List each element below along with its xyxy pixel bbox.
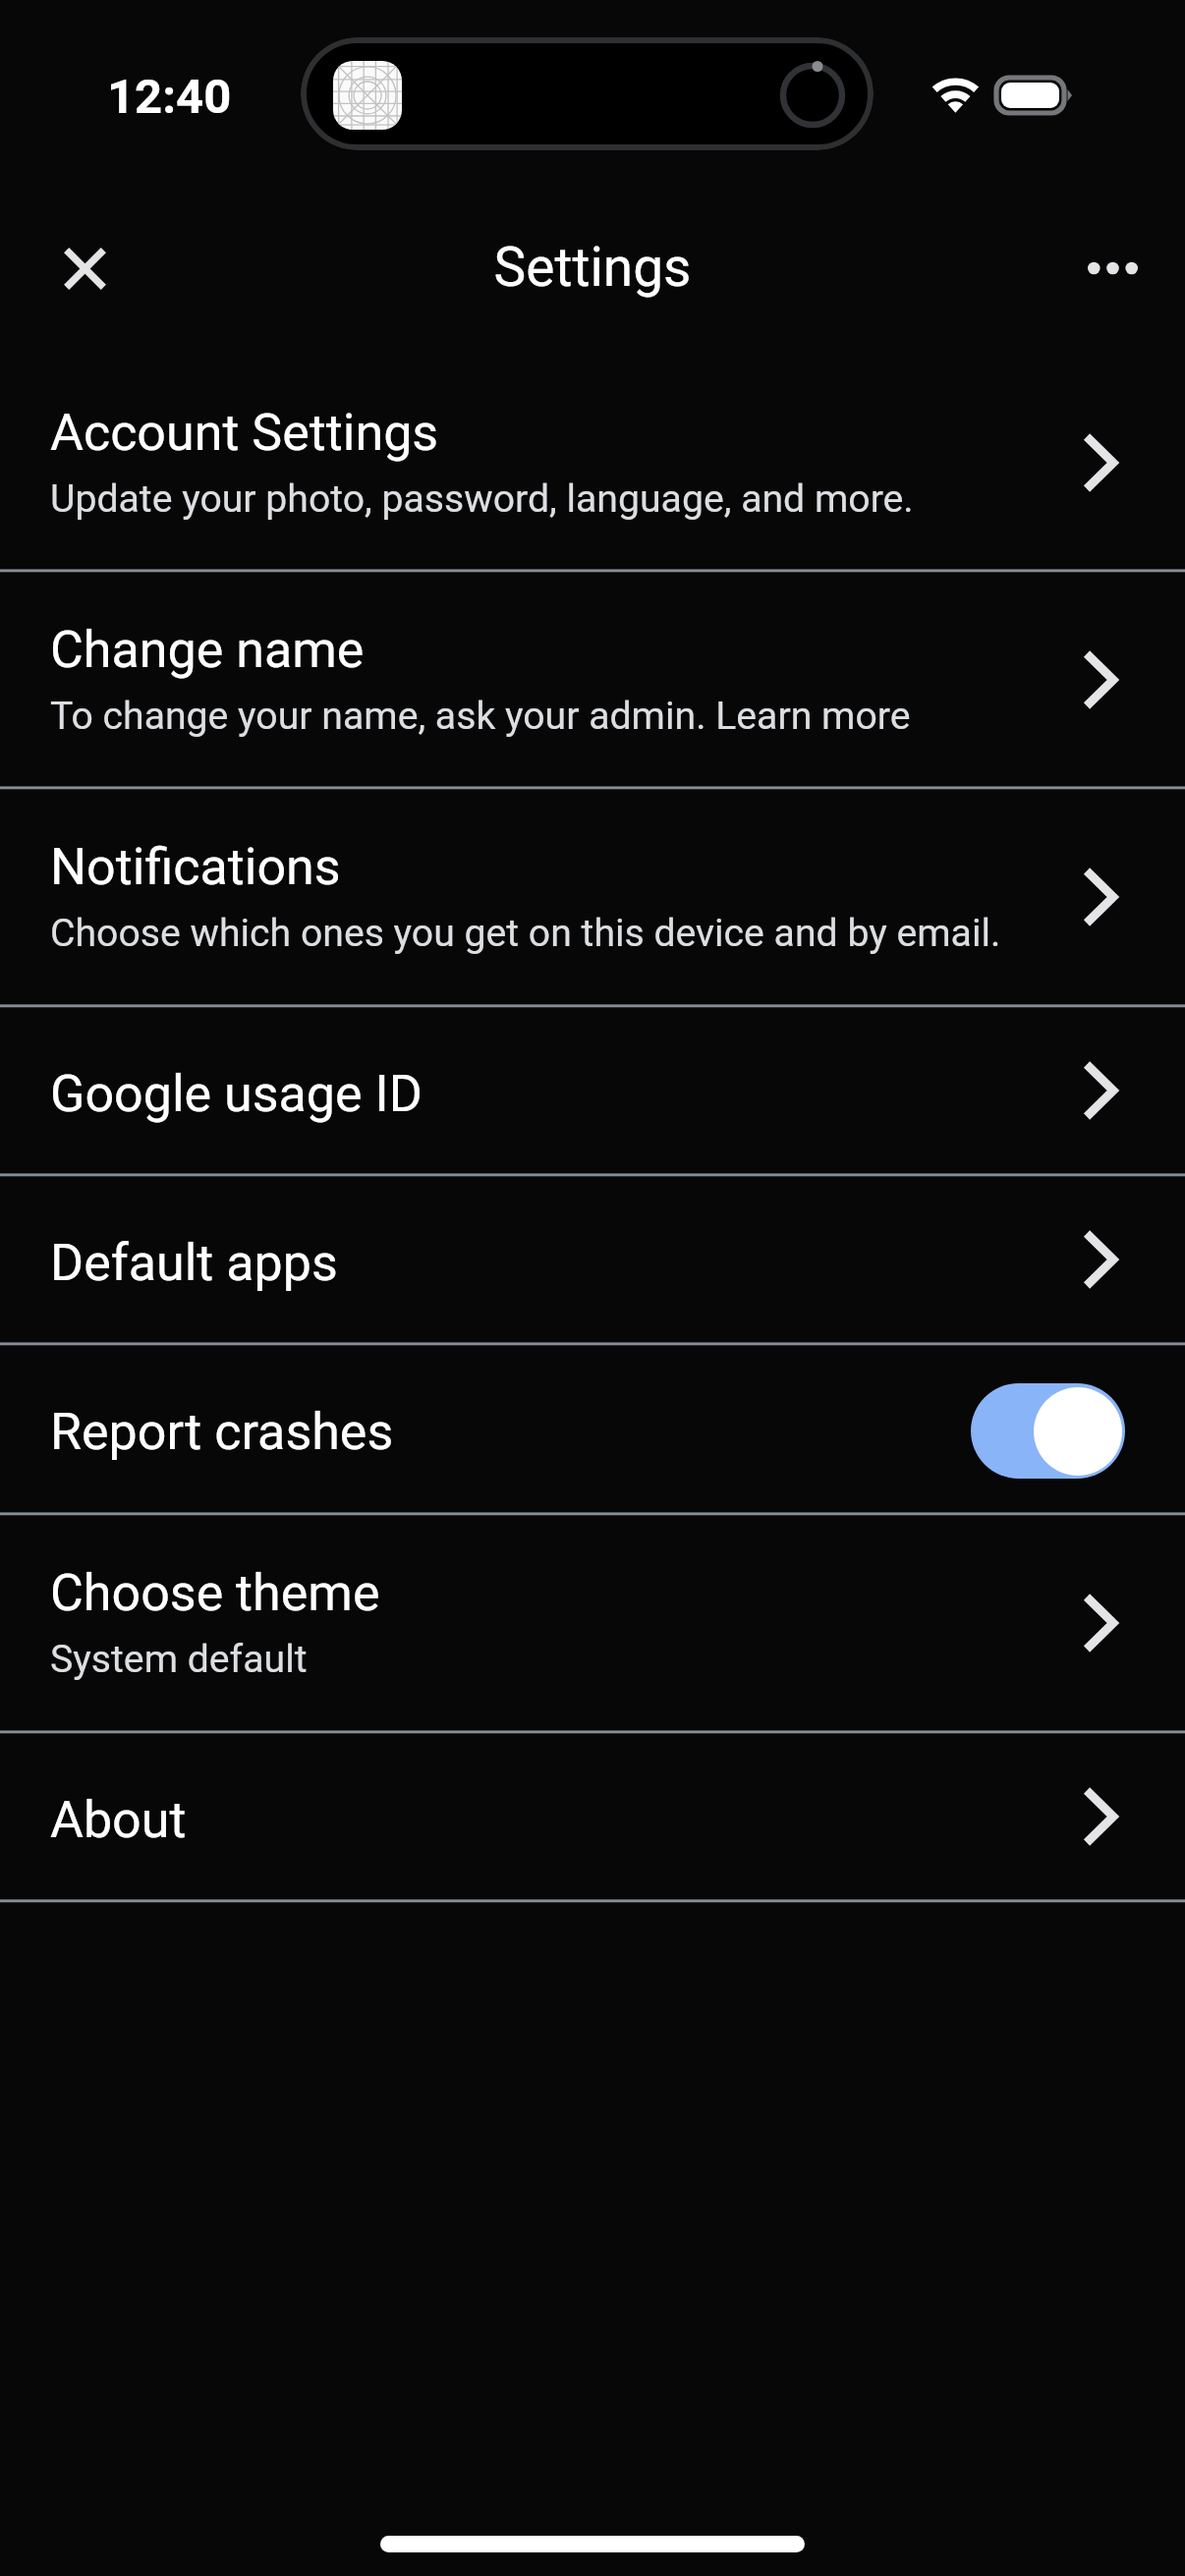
- staticText: Google usage ID: [50, 1064, 423, 1124]
- staticText: Default apps: [50, 1233, 338, 1293]
- staticText: Choose which ones you get on this device…: [50, 911, 1001, 956]
- staticText: Notifications: [50, 837, 341, 897]
- button[interactable]: Report crashes: [0, 1345, 1185, 1513]
- button[interactable]: Default apps: [0, 1176, 1185, 1343]
- staticText: Account Settings: [50, 403, 439, 463]
- staticText: Settings: [0, 236, 1185, 299]
- staticText: To change your name, ask your admin. Lea…: [50, 694, 911, 739]
- staticText: Choose theme: [50, 1563, 380, 1623]
- staticText: Change name: [50, 620, 365, 680]
- button[interactable]: Notifications: [0, 789, 1185, 1005]
- button[interactable]: Close: [26, 209, 143, 327]
- button[interactable]: Google usage ID: [0, 1007, 1185, 1174]
- button[interactable]: Account Settings: [0, 355, 1185, 570]
- button[interactable]: Change name: [0, 572, 1185, 787]
- staticText: Update your photo, password, language, a…: [50, 476, 914, 522]
- staticText: 12:40: [107, 69, 232, 125]
- staticText: About: [50, 1790, 187, 1850]
- button[interactable]: Choose theme: [0, 1515, 1185, 1731]
- button[interactable]: More options: [1053, 209, 1171, 327]
- staticText: System default: [50, 1637, 308, 1682]
- button[interactable]: About: [0, 1733, 1185, 1900]
- staticText: Report crashes: [50, 1402, 971, 1462]
